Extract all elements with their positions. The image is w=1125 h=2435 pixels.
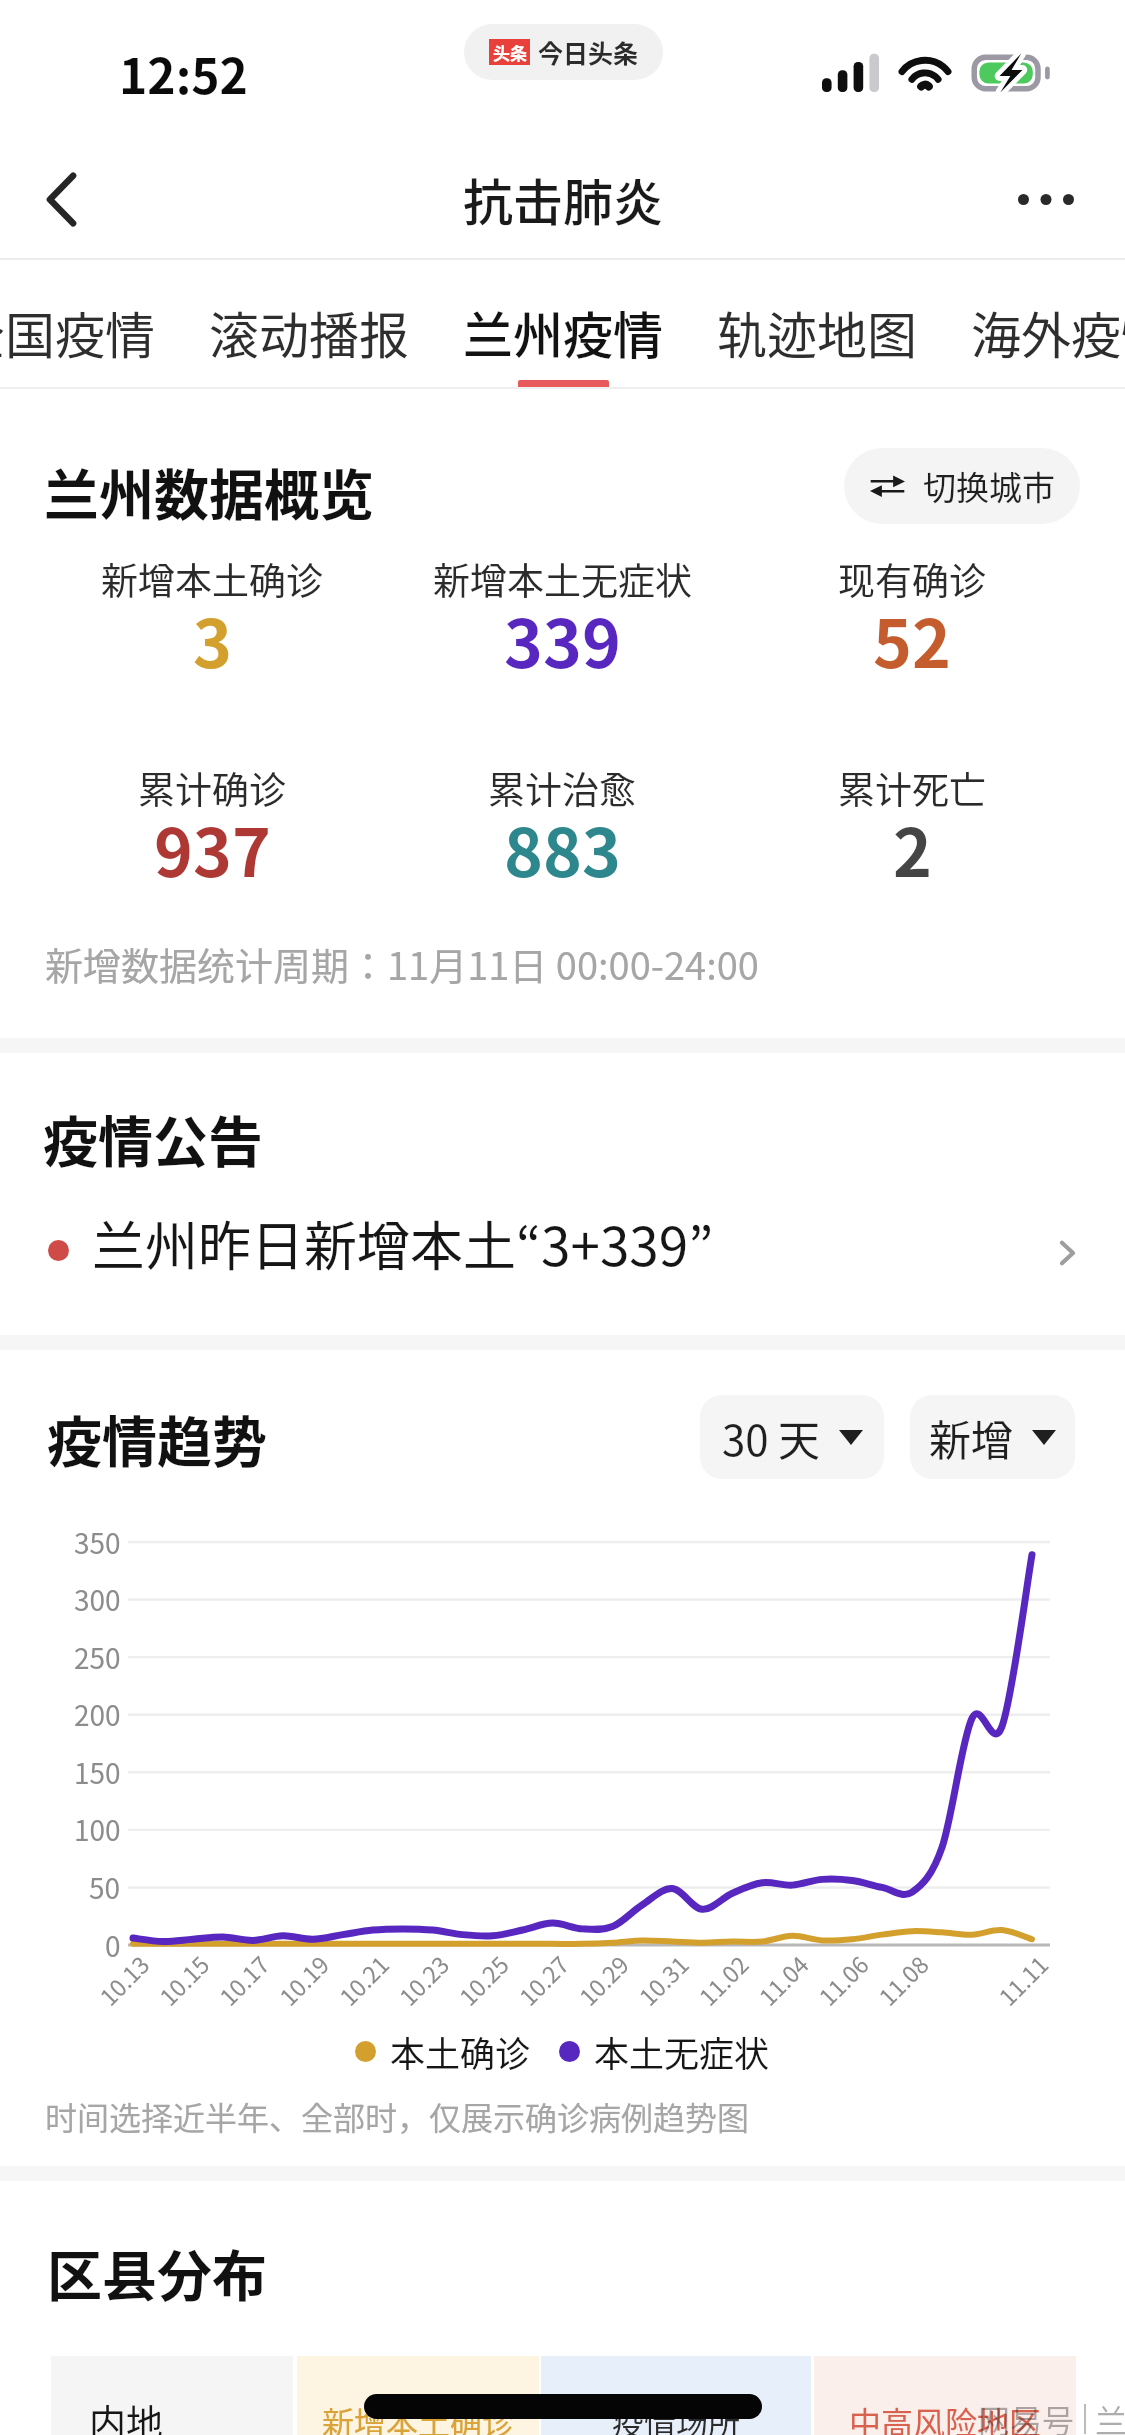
button[interactable]: 兰州昨日新增本土“3+339”: [0, 1203, 1125, 1283]
staticText: 滚动播报: [209, 296, 409, 368]
staticText: 本土确诊: [390, 2026, 531, 2077]
button[interactable]: 全国疫情: [0, 258, 182, 389]
staticText: 现有确诊: [838, 552, 986, 606]
staticText: 2: [893, 800, 932, 896]
staticText: 新增本土确诊: [322, 2398, 515, 2435]
staticText: 区县分布: [47, 2232, 268, 2312]
button[interactable]: Back: [0, 140, 122, 258]
staticText: 今日头条: [538, 34, 639, 70]
staticText: 累计确诊: [138, 761, 286, 815]
staticText: 抗击肺炎: [463, 163, 663, 235]
button[interactable]: 内地: [51, 2356, 293, 2435]
button[interactable]: More options: [967, 140, 1125, 258]
staticText: 新增本土无症状: [433, 552, 692, 606]
button[interactable]: 轨迹地图: [690, 258, 944, 389]
button[interactable]: 新增本土确诊: [297, 2356, 539, 2435]
button[interactable]: 现有确诊: [732, 552, 1092, 672]
staticText: 339: [504, 591, 621, 687]
staticText: 本土无症状: [594, 2026, 770, 2077]
staticText: 疫情公告: [43, 1098, 264, 1178]
staticText: 全国疫情: [0, 296, 155, 368]
staticText: 时间选择近半年、全部时，仅展示确诊病例趋势图: [45, 2093, 750, 2139]
staticText: 883: [504, 800, 621, 896]
staticText: 内地: [89, 2394, 163, 2435]
staticText: 累计治愈: [488, 761, 636, 815]
staticText: 30 天: [722, 1407, 821, 1468]
staticText: 疫情趋势: [47, 1398, 268, 1478]
staticText: 兰州昨日新增本土“3+339”: [92, 1205, 714, 1282]
staticText: 切换城市: [923, 462, 1055, 510]
staticText: 中高风险地区: [849, 2398, 1042, 2435]
button[interactable]: 新增本土确诊: [32, 552, 392, 672]
staticText: 937: [154, 800, 271, 896]
button[interactable]: 中高风险地区: [814, 2356, 1076, 2435]
button[interactable]: 滚动播报: [182, 258, 436, 389]
button[interactable]: 累计死亡: [732, 761, 1092, 881]
staticText: 海外疫情: [971, 296, 1125, 368]
button[interactable]: 新增: [910, 1395, 1075, 1479]
button[interactable]: 30 天: [700, 1395, 884, 1479]
staticText: 12:52: [119, 38, 248, 108]
staticText: 疫情场所: [612, 2398, 741, 2435]
button[interactable]: 累计确诊: [32, 761, 392, 881]
staticText: 兰州疫情: [463, 296, 663, 368]
staticText: 累计死亡: [838, 761, 986, 815]
button[interactable]: 兰州疫情: [436, 258, 690, 389]
staticText: 兰州数据概览: [44, 451, 375, 531]
staticText: 兰州蘭: [1095, 2396, 1125, 2435]
button[interactable]: 新增本土无症状: [382, 552, 742, 672]
staticText: 新增本土确诊: [101, 552, 323, 606]
button[interactable]: 累计治愈: [382, 761, 742, 881]
button[interactable]: 疫情场所: [541, 2356, 811, 2435]
staticText: 52: [873, 591, 951, 687]
button[interactable]: 海外疫情: [944, 258, 1125, 389]
staticText: 3: [193, 591, 232, 687]
staticText: 网易号: [978, 2396, 1075, 2435]
staticText: 新增数据统计周期：11月11日 00:00-24:00: [45, 936, 759, 991]
staticText: 头条: [493, 40, 527, 65]
button[interactable]: 切换城市: [844, 448, 1080, 524]
staticText: 轨迹地图: [717, 296, 917, 368]
staticText: 新增: [929, 1407, 1014, 1468]
